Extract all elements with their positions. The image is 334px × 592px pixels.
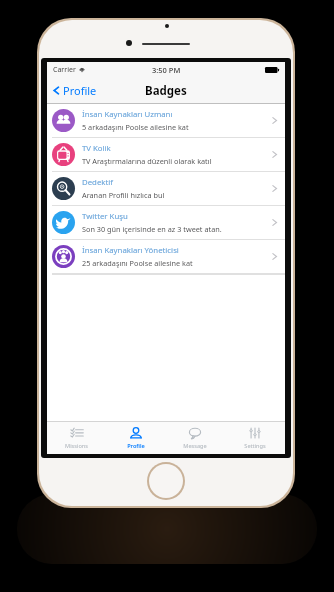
button[interactable]: Profile — [106, 421, 165, 454]
staticText: 3:50 PM — [152, 65, 181, 75]
staticText: Badges — [145, 83, 187, 99]
button[interactable]: İnsan Kaynakları Uzmanı — [47, 104, 285, 138]
staticText: 25 arkadaşını Poolse ailesine kat — [82, 258, 193, 268]
staticText: Settings — [244, 442, 266, 450]
button[interactable]: Twitter Kuşu — [47, 206, 285, 240]
staticText: Dedektif — [82, 177, 113, 188]
button[interactable]: Message — [165, 421, 225, 454]
button[interactable]: İnsan Kaynakları Yöneticisi — [47, 240, 285, 274]
staticText: Son 30 gün içerisinde en az 3 tweet atan… — [82, 224, 222, 234]
button[interactable]: Profile — [47, 77, 103, 104]
button[interactable]: Settings — [225, 421, 285, 454]
button[interactable]: TV Kolik — [47, 138, 285, 172]
staticText: Missions — [65, 442, 88, 450]
staticText: Message — [183, 442, 207, 450]
staticText: Carrier — [53, 65, 76, 75]
staticText: 5 arkadaşını Poolse ailesine kat — [82, 122, 189, 132]
staticText: İnsan Kaynakları Yöneticisi — [82, 245, 179, 256]
button[interactable]: Dedektif — [47, 172, 285, 206]
staticText: TV Araştırmalarına düzenli olarak katıl — [82, 156, 212, 166]
staticText: TV Kolik — [82, 143, 111, 154]
staticText: Profile — [63, 83, 97, 98]
button[interactable]: Missions — [47, 421, 106, 454]
staticText: Profile — [127, 442, 145, 450]
staticText: Twitter Kuşu — [82, 211, 128, 222]
staticText: Aranan Profili hızlıca bul — [82, 190, 165, 200]
staticText: İnsan Kaynakları Uzmanı — [82, 109, 173, 120]
